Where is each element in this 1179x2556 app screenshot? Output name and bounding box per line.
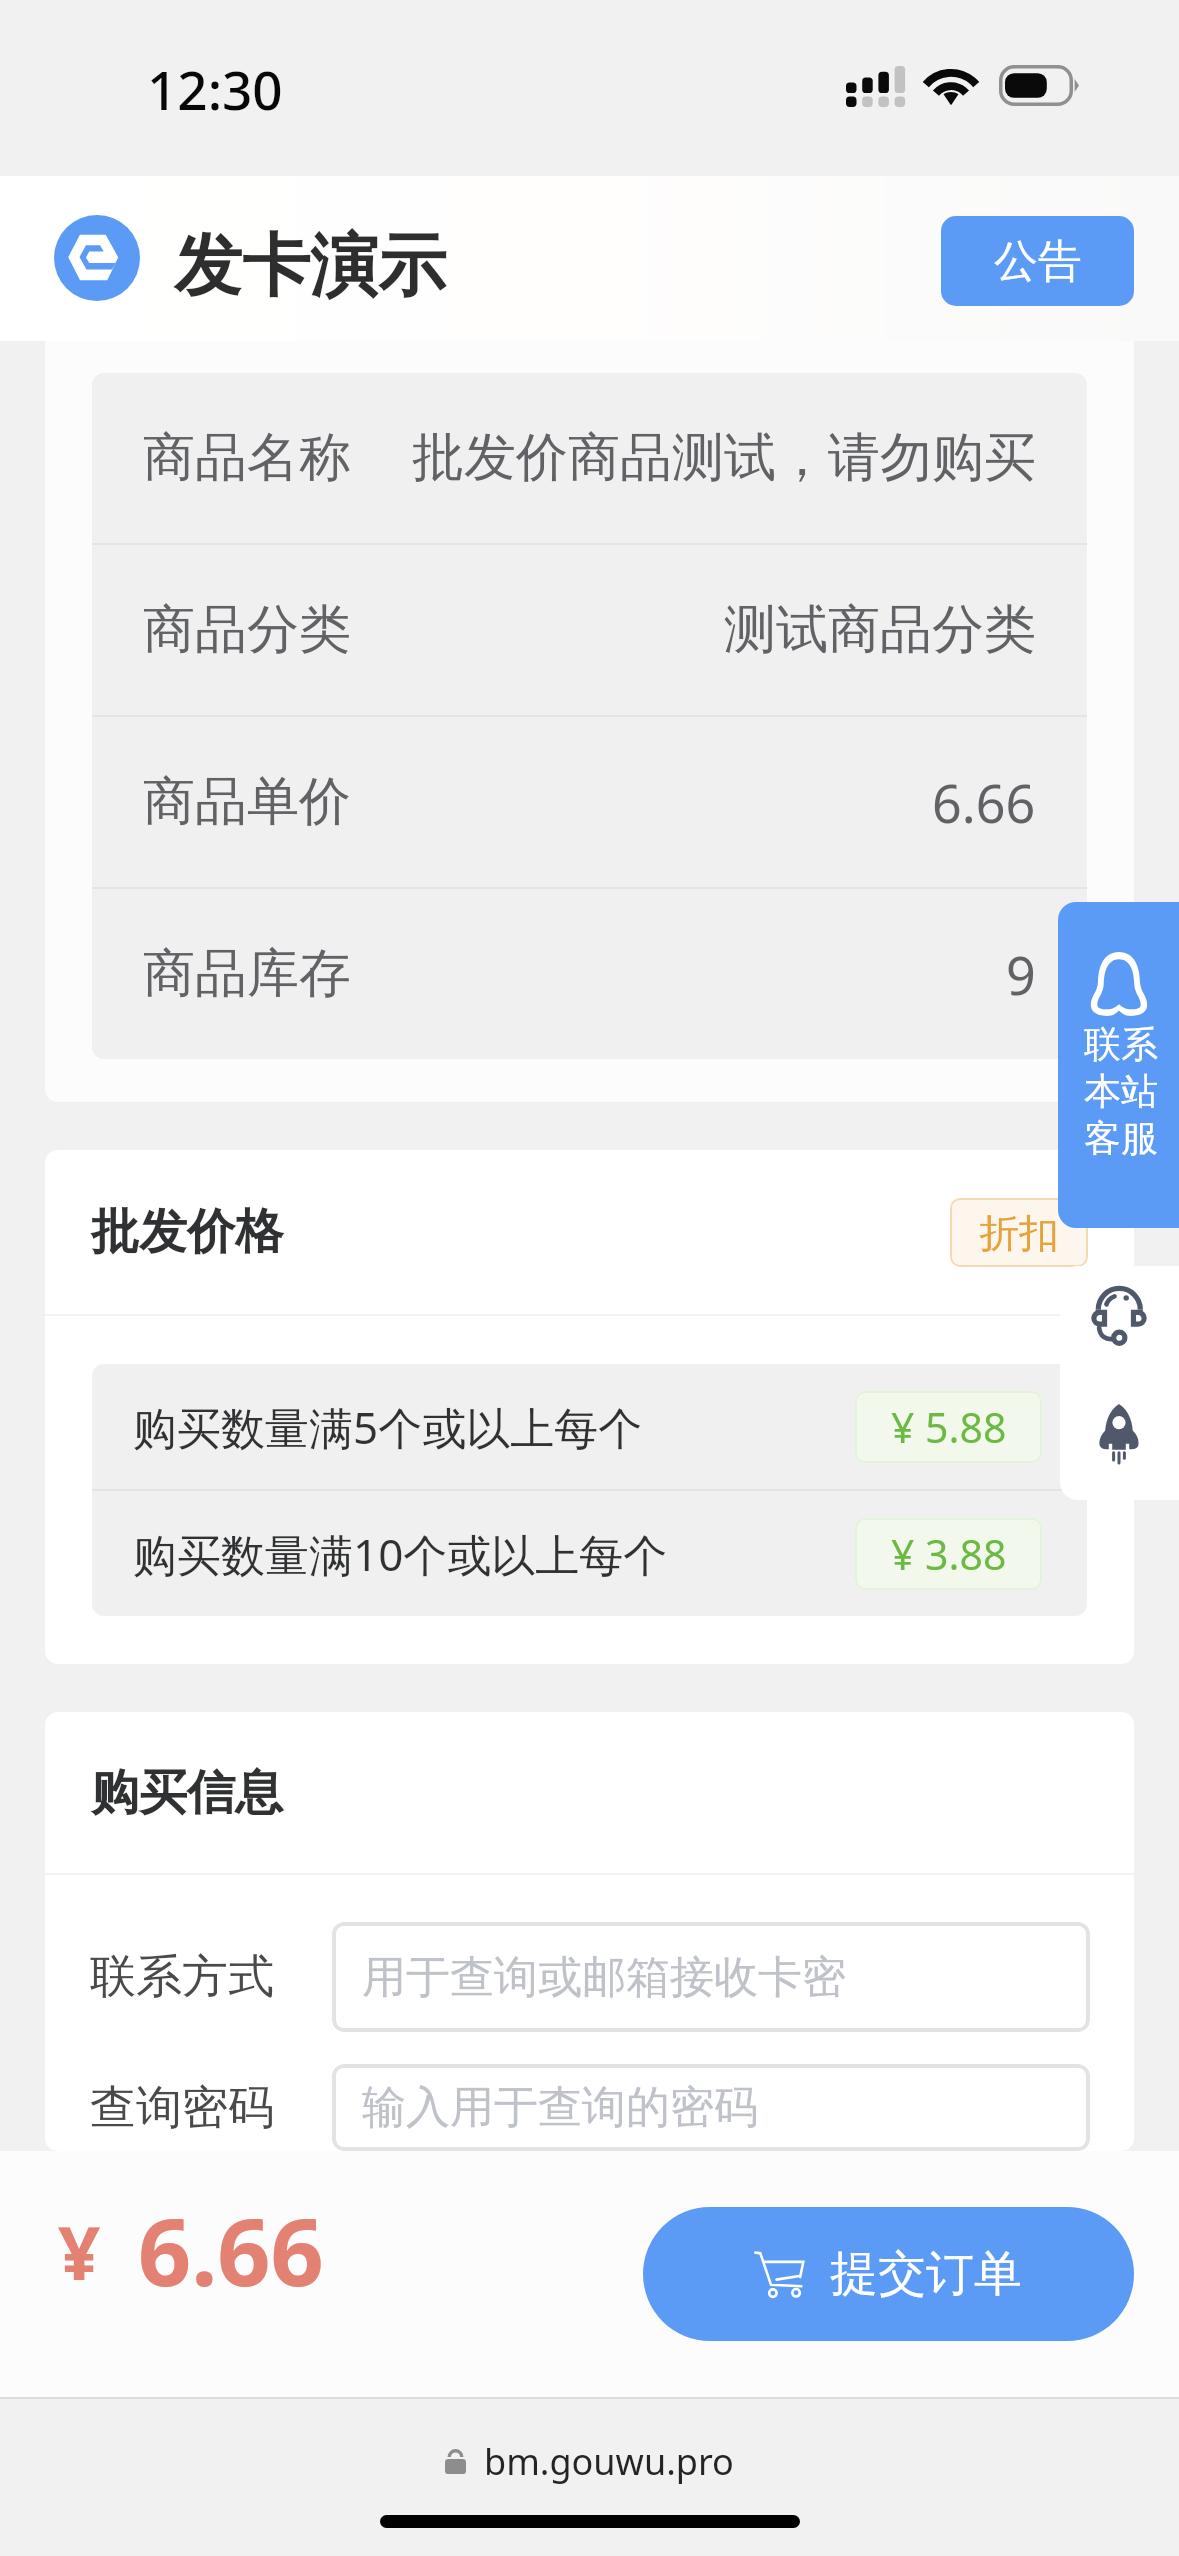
staticText: 公告 [994,234,1082,289]
staticText: 测试商品分类 [724,597,1036,663]
button[interactable]: 用于查询或邮箱接收卡密 [332,1922,1090,2032]
staticText: ¥ 5.88 [891,1399,1007,1455]
button[interactable]: 公告 [941,216,1134,306]
button[interactable]: 站点图标 [54,215,140,301]
staticText: 购买信息 [91,1763,283,1823]
staticText: 12:30 [147,53,283,125]
staticText: 提交订单 [830,2244,1022,2304]
staticText: 6.66 [138,2187,324,2314]
staticText: ¥ [58,2201,101,2302]
staticText: 批发价商品测试，请勿购买 [412,425,1036,491]
staticText: ¥ 3.88 [891,1526,1007,1582]
staticText: 联系 本站 客服 [1084,1021,1158,1162]
staticText: bm.gouwu.pro [484,2437,734,2486]
staticText: 批发价格 [91,1202,283,1262]
button[interactable]: 联系本站客服 [1058,902,1179,1228]
staticText: 用于查询或邮箱接收卡密 [362,1950,846,2005]
button[interactable]: 回到顶部 [1060,1383,1179,1500]
staticText: 商品单价 [143,769,351,835]
staticText: 购买数量满5个或以上每个 [133,1397,643,1457]
staticText: 联系方式 [90,1948,274,2006]
staticText: 查询密码 [90,2079,274,2137]
button[interactable]: 在线客服 [1060,1266,1179,1383]
staticText: 商品名称 [143,425,351,491]
staticText: 输入用于查询的密码 [362,2080,758,2135]
staticText: 商品分类 [143,597,351,663]
staticText: 发卡演示 [174,224,446,310]
button[interactable]: 提交订单 [643,2207,1134,2341]
staticText: 6.66 [932,767,1036,838]
staticText: 9 [1006,939,1036,1010]
staticText: 商品库存 [143,941,351,1007]
button[interactable]: 输入用于查询的密码 [332,2064,1090,2151]
staticText: 购买数量满10个或以上每个 [133,1524,668,1584]
staticText: 折扣 [979,1208,1059,1258]
